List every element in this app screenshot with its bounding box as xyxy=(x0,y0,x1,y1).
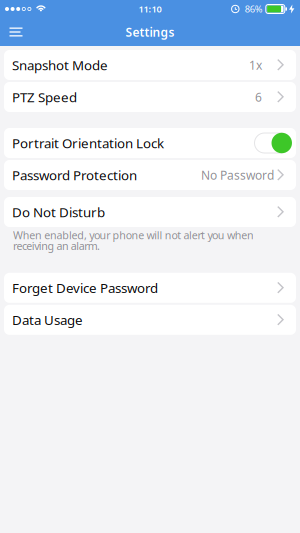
staticText: Forget Device Password xyxy=(12,279,158,297)
staticText: Data Usage xyxy=(12,311,83,329)
staticText: 6 xyxy=(255,89,262,105)
staticText: When enabled, your phone will not alert … xyxy=(13,228,254,242)
staticText: receiving an alarm. xyxy=(13,239,100,253)
staticText: No Password xyxy=(201,167,274,183)
staticText: Password Protection xyxy=(12,166,137,184)
button[interactable]: Password Protection xyxy=(4,160,296,190)
staticText: 1x xyxy=(249,57,262,73)
button[interactable]: Menu xyxy=(4,22,28,42)
button[interactable]: Snapshot Mode xyxy=(4,50,296,80)
button[interactable]: Forget Device Password xyxy=(4,273,296,303)
staticText: 11:10 xyxy=(138,3,161,15)
staticText: 86% xyxy=(245,3,263,15)
staticText: Settings xyxy=(125,24,174,40)
button[interactable]: Do Not Disturb xyxy=(4,197,296,227)
staticText: PTZ Speed xyxy=(12,88,77,106)
button[interactable]: PTZ Speed xyxy=(4,82,296,112)
button[interactable]: Data Usage xyxy=(4,305,296,335)
staticText: Snapshot Mode xyxy=(12,56,108,74)
staticText: Do Not Disturb xyxy=(12,203,105,221)
staticText: Portrait Orientation Lock xyxy=(12,134,164,152)
button[interactable]: Portrait Orientation Lock xyxy=(4,128,296,158)
